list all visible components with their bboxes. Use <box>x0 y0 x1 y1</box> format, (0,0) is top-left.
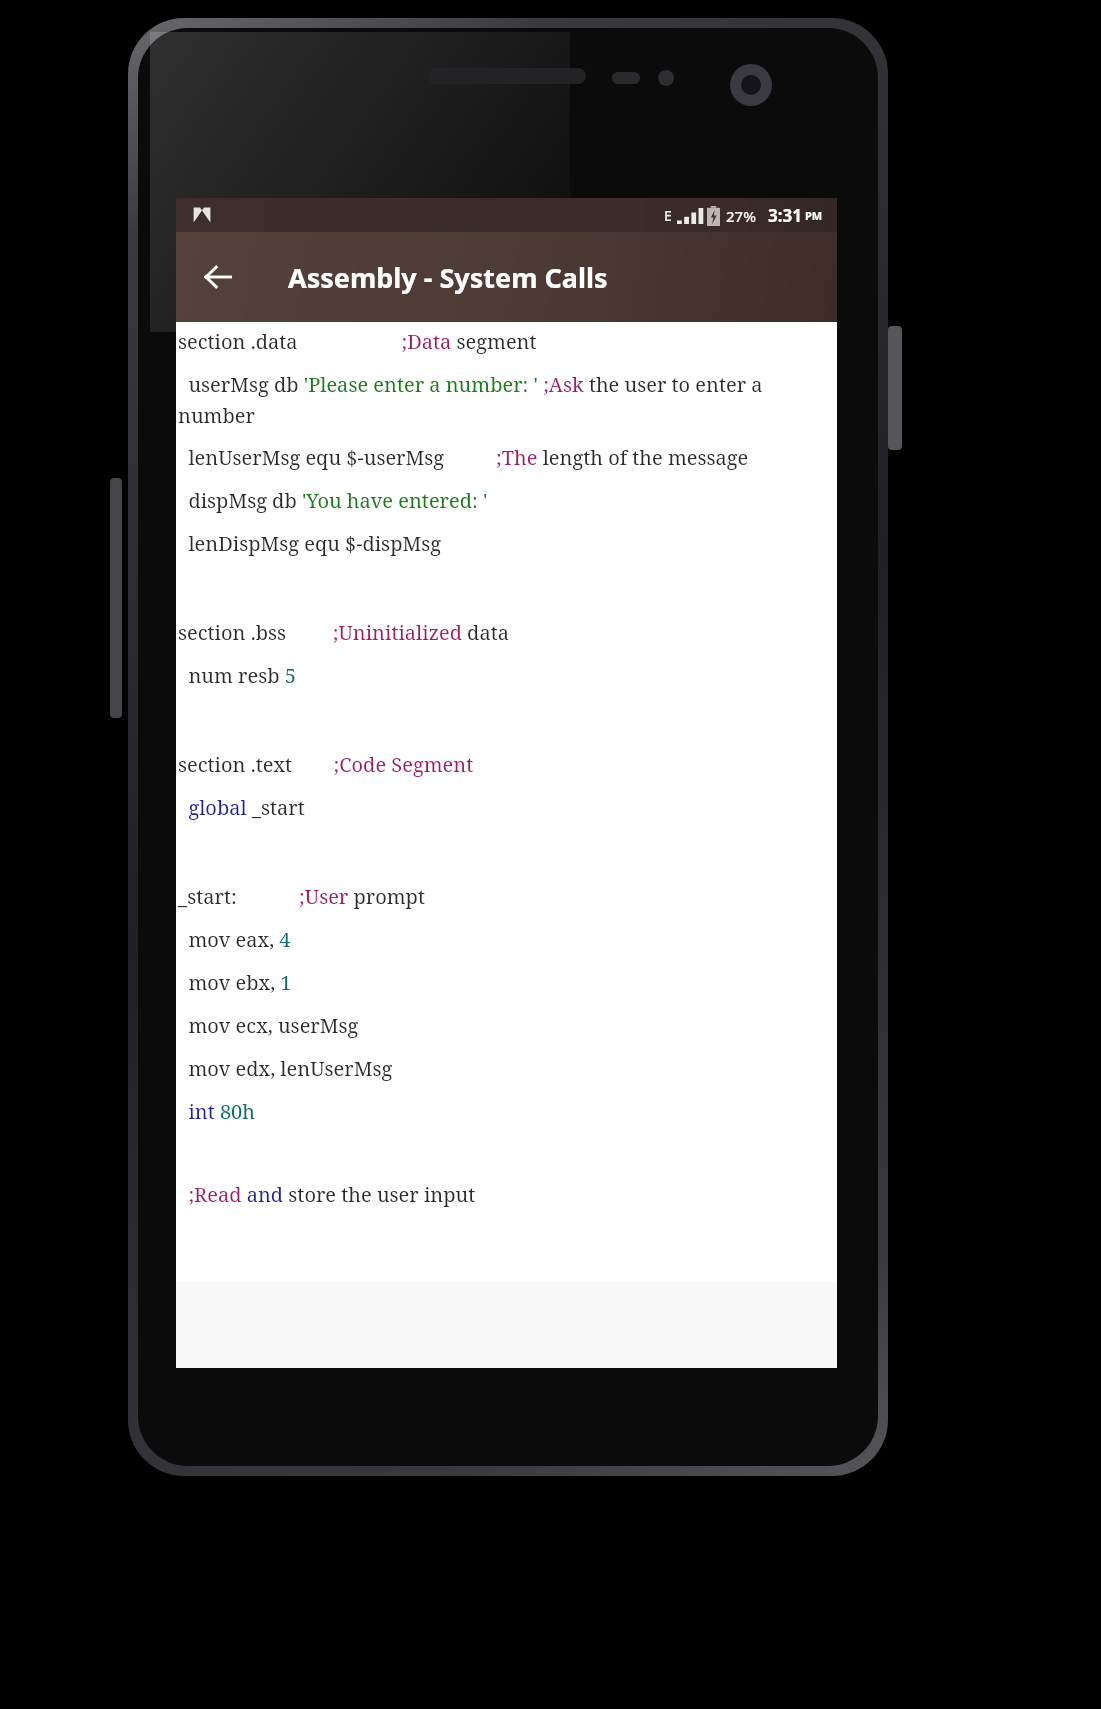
staticText: _start: ;User prompt <box>178 883 425 910</box>
staticText: E <box>664 206 672 225</box>
staticText: 27% <box>726 206 756 226</box>
staticText: global _start <box>178 794 305 821</box>
staticText: dispMsg db 'You have entered: ' <box>178 487 488 514</box>
staticText: section .data ;Data segment <box>178 328 537 355</box>
staticText: ;Read and store the user input <box>178 1181 476 1208</box>
staticText: lenDispMsg equ $-dispMsg <box>178 530 441 557</box>
staticText: mov ecx, userMsg <box>178 1012 359 1039</box>
staticText: mov ebx, 1 <box>178 969 292 996</box>
staticText: Assembly - System Calls <box>288 259 608 296</box>
staticText: mov edx, lenUserMsg <box>178 1055 393 1082</box>
staticText: num resb 5 <box>178 662 296 689</box>
staticText: section .bss ;Uninitialized data <box>178 619 509 646</box>
staticText: userMsg db 'Please enter a number: ' ;As… <box>178 371 827 428</box>
staticText: section .text ;Code Segment <box>178 751 474 778</box>
staticText: 3:31 <box>768 204 802 227</box>
staticText: PM <box>805 208 823 223</box>
button[interactable]: Back <box>190 249 246 305</box>
staticText: lenUserMsg equ $-userMsg ;The length of … <box>178 444 749 471</box>
staticText: mov eax, 4 <box>178 926 291 953</box>
staticText: int 80h <box>178 1098 255 1125</box>
